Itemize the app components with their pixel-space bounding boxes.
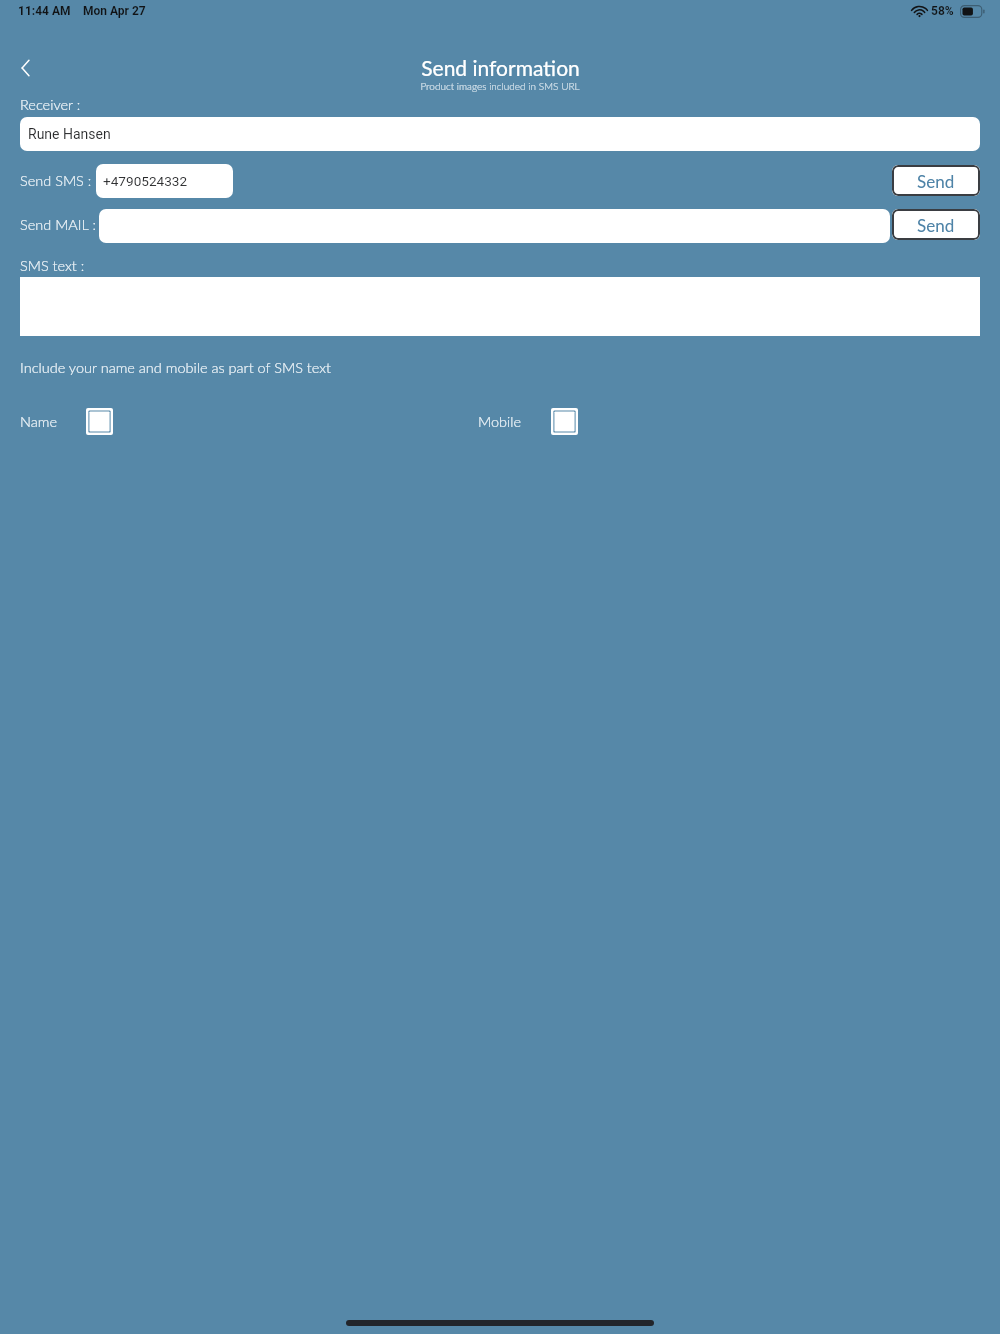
- staticText: SMS text :: [20, 257, 85, 274]
- button[interactable]: [99, 209, 890, 243]
- button[interactable]: Send: [892, 209, 980, 240]
- staticText: Product images included in SMS URL: [420, 80, 580, 92]
- staticText: Rune Hansen: [28, 126, 111, 142]
- staticText: Send MAIL :: [20, 216, 96, 233]
- staticText: Mobile: [478, 413, 522, 430]
- staticText: Send information: [421, 55, 580, 80]
- button[interactable]: Back: [6, 49, 44, 87]
- staticText: Name: [20, 413, 57, 430]
- staticText: Mon Apr 27: [83, 4, 146, 18]
- staticText: Include your name and mobile as part of …: [20, 359, 332, 376]
- button[interactable]: Send: [892, 165, 980, 196]
- staticText: Send SMS :: [20, 172, 92, 189]
- button[interactable]: Toggle checkbox: [86, 408, 113, 435]
- staticText: +4790524332: [103, 173, 188, 189]
- staticText: Send: [917, 215, 955, 235]
- staticText: Send: [917, 171, 955, 191]
- staticText: Receiver :: [20, 96, 81, 113]
- button[interactable]: +4790524332: [96, 164, 233, 198]
- button[interactable]: Rune Hansen: [20, 117, 980, 151]
- staticText: 11:44 AM: [18, 4, 71, 18]
- staticText: 58%: [931, 4, 954, 18]
- button[interactable]: Toggle checkbox: [551, 408, 578, 435]
